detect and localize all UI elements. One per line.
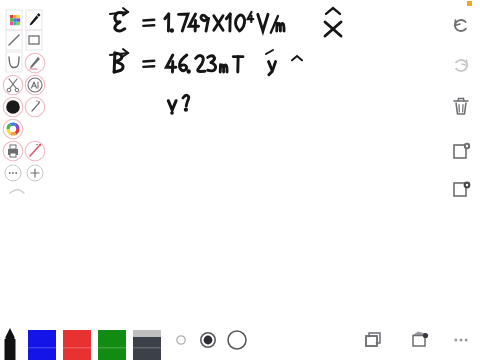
button[interactable]: Highlighter xyxy=(24,52,46,74)
button[interactable]: Green marker xyxy=(91,324,126,360)
button[interactable]: Pages xyxy=(358,325,388,355)
button[interactable]: Curve tool xyxy=(2,52,24,74)
button[interactable]: Pen tool xyxy=(24,8,46,30)
button[interactable]: Color palette xyxy=(2,8,24,30)
button[interactable]: AI assist xyxy=(24,74,46,96)
button[interactable]: Add page xyxy=(404,325,434,355)
button[interactable]: Copy page xyxy=(446,136,476,166)
button[interactable]: Collapse toolbar xyxy=(6,184,28,198)
button[interactable]: Medium stroke, selected xyxy=(194,326,222,354)
button[interactable]: Undo xyxy=(446,10,476,40)
button[interactable]: Thick stroke xyxy=(222,325,252,355)
button[interactable]: Fill color xyxy=(2,96,24,118)
button[interactable]: Line tool xyxy=(2,30,24,52)
button[interactable]: Black pen xyxy=(0,324,22,360)
button[interactable]: Print xyxy=(2,140,24,162)
button[interactable]: Delete xyxy=(446,92,476,122)
button[interactable]: Magic wand xyxy=(24,140,46,162)
button[interactable]: Shape tool xyxy=(24,30,46,52)
button[interactable]: Eraser xyxy=(24,96,46,118)
button[interactable]: Lasso select xyxy=(2,74,24,96)
button[interactable]: More options xyxy=(448,327,474,353)
button[interactable]: Redo xyxy=(446,50,476,80)
button[interactable]: Color wheel xyxy=(2,118,24,140)
button[interactable]: Add tool xyxy=(24,162,46,184)
button[interactable]: Blue marker xyxy=(22,324,56,360)
button[interactable]: Thin stroke xyxy=(168,327,194,353)
button[interactable]: More tools xyxy=(2,162,24,184)
button[interactable]: Page settings xyxy=(446,174,476,204)
button[interactable]: Grey marker xyxy=(126,324,161,360)
button[interactable]: Red marker xyxy=(56,324,91,360)
